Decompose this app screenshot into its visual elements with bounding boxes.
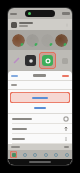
- button[interactable]: [10, 92, 70, 103]
- button[interactable]: [8, 124, 72, 133]
- button[interactable]: Nav item 6: [64, 152, 70, 158]
- button[interactable]: Contact: [26, 34, 39, 47]
- button[interactable]: More options: [8, 19, 72, 30]
- button[interactable]: Nav item 5: [53, 152, 59, 158]
- button[interactable]: [8, 134, 72, 143]
- button[interactable]: [8, 103, 72, 113]
- button[interactable]: More options: [65, 23, 69, 27]
- button[interactable]: Contact: [12, 34, 25, 47]
- button[interactable]: Cancel: [11, 75, 18, 77]
- button[interactable]: Share to WhatsApp: [39, 52, 56, 69]
- button[interactable]: Contact: [55, 34, 68, 47]
- button[interactable]: Nav item 4: [43, 152, 49, 158]
- button[interactable]: Contact: [41, 34, 54, 47]
- button[interactable]: Nav item 2: [22, 152, 28, 158]
- button[interactable]: Home: [10, 151, 17, 158]
- button[interactable]: [8, 114, 72, 123]
- button[interactable]: Edit: [11, 55, 21, 65]
- button[interactable]: App: [25, 55, 36, 66]
- button[interactable]: Nav item 3: [32, 152, 38, 158]
- button[interactable]: More apps: [60, 56, 69, 65]
